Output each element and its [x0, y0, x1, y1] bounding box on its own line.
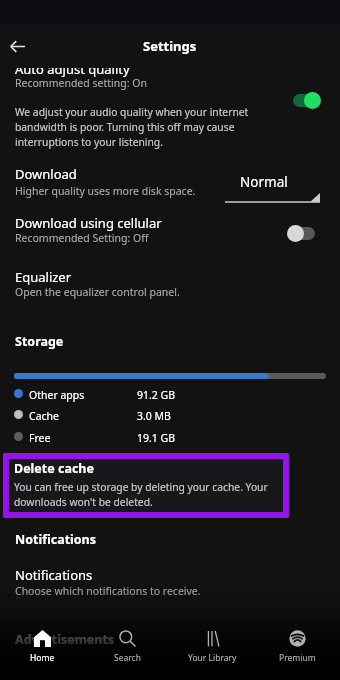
button[interactable]: Switch on — [293, 92, 321, 109]
staticText: Equalizer — [15, 268, 72, 286]
staticText: Free — [29, 431, 51, 445]
staticText: Recommended setting: On — [15, 76, 147, 90]
button[interactable]: Download quality — [225, 170, 320, 203]
staticText: Auto adjust quality — [15, 60, 130, 78]
staticText: Other apps — [29, 388, 85, 402]
staticText: Search — [114, 652, 141, 664]
staticText: Open the equalizer control panel. — [15, 285, 180, 299]
staticText: Notifications — [15, 531, 97, 548]
button[interactable]: Premium — [255, 630, 340, 664]
staticText: Your Library — [188, 652, 237, 664]
staticText: Recommended Setting: Off — [15, 231, 149, 245]
staticText: Choose which notifications to receive. — [15, 584, 201, 598]
staticText: Notifications — [15, 566, 93, 584]
button[interactable]: Your Library — [170, 630, 255, 664]
button[interactable]: Home — [0, 630, 85, 664]
staticText: 19.1 GB — [137, 431, 176, 445]
staticText: Delete cache — [14, 460, 94, 477]
button[interactable]: Back — [3, 32, 32, 61]
staticText: Normal — [240, 173, 288, 191]
staticText: You can free up storage by deleting your… — [14, 480, 288, 509]
button[interactable]: Switch off — [287, 225, 315, 242]
staticText: Settings — [143, 37, 197, 55]
staticText: Cache — [29, 409, 59, 423]
staticText: Higher quality uses more disk space. — [15, 184, 196, 198]
staticText: Home — [30, 652, 55, 664]
staticText: Download — [15, 165, 77, 183]
staticText: Storage — [15, 333, 64, 350]
staticText: Advertisements — [15, 631, 115, 648]
staticText: 3.0 MB — [137, 409, 171, 423]
button[interactable]: Delete cache — [9, 459, 283, 512]
staticText: Download using cellular — [15, 214, 162, 232]
staticText: 91.2 GB — [137, 388, 176, 402]
staticText: Premium — [279, 652, 316, 664]
button[interactable]: Search — [85, 630, 170, 664]
staticText: We adjust your audio quality when your i… — [15, 105, 287, 149]
